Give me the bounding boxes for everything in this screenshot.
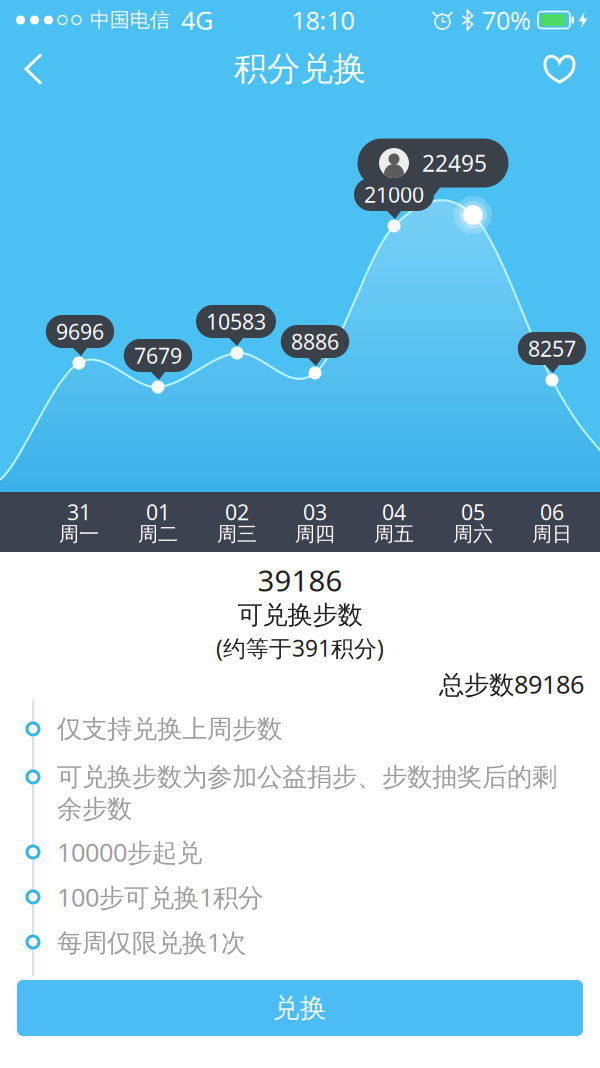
staticText: 周日 <box>532 522 572 546</box>
button[interactable]: Back <box>0 40 63 97</box>
staticText: 05 <box>461 498 485 526</box>
staticText: 积分兑换 <box>234 48 366 89</box>
staticText: 中国电信 <box>90 8 170 32</box>
staticText: 10583 <box>206 307 266 336</box>
staticText: (约等于391积分) <box>216 633 384 663</box>
staticText: 7679 <box>134 341 182 370</box>
staticText: 22495 <box>422 148 487 178</box>
staticText: 39186 <box>257 560 342 599</box>
staticText: 周一 <box>59 522 99 546</box>
staticText: 可兑换步数 <box>237 599 362 630</box>
staticText: 21000 <box>364 180 424 209</box>
staticText: 01 <box>146 498 170 526</box>
staticText: 8257 <box>528 334 576 363</box>
staticText: 70% <box>482 3 531 37</box>
staticText: 周四 <box>295 522 335 546</box>
button[interactable]: Favorite <box>523 42 600 96</box>
staticText: 仅支持兑换上周步数 <box>57 713 282 744</box>
staticText: 4G <box>181 3 213 37</box>
staticText: 10000步起兑 <box>57 835 202 869</box>
staticText: 03 <box>303 498 327 526</box>
staticText: 8886 <box>291 327 339 356</box>
staticText: 31 <box>67 498 91 526</box>
staticText: 02 <box>225 498 249 526</box>
staticText: 周三 <box>217 522 257 546</box>
staticText: 周五 <box>374 522 414 546</box>
staticText: 总步数89186 <box>439 667 584 701</box>
staticText: 余步数 <box>57 793 132 824</box>
button[interactable]: 兑换 <box>17 980 583 1036</box>
staticText: 06 <box>540 498 564 526</box>
staticText: 每周仅限兑换1次 <box>57 925 246 959</box>
staticText: 9696 <box>56 317 104 346</box>
staticText: 周六 <box>453 522 493 546</box>
staticText: 兑换 <box>273 992 327 1024</box>
staticText: 100步可兑换1积分 <box>57 880 263 914</box>
staticText: 18:10 <box>291 3 354 37</box>
staticText: 04 <box>382 498 406 526</box>
staticText: 可兑换步数为参加公益捐步、步数抽奖后的剩 <box>57 761 557 792</box>
staticText: 周二 <box>138 522 178 546</box>
